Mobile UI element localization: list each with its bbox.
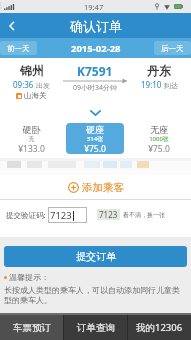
staticText: ¥75.0 [66, 143, 124, 154]
staticText: 我的12306 [136, 321, 183, 334]
staticText: 确认订单 [70, 18, 122, 34]
staticText: 无 [3, 135, 60, 143]
staticText: 长按成人类型的乘车人，可以自动添加同行儿童类型的乘车人。 [4, 285, 187, 306]
button[interactable]: 硬座 [66, 123, 124, 154]
button[interactable]: 看不清，换一张 [123, 211, 165, 219]
button[interactable]: 硬卧 [3, 123, 60, 154]
staticText: 硬座 [66, 124, 124, 135]
button[interactable]: 提交订单 [4, 246, 187, 267]
staticText: 提交订单 [76, 250, 116, 263]
staticText: 2015-02-28 [71, 42, 121, 55]
button[interactable]: 添加乘客 [0, 175, 191, 199]
button[interactable]: 无座 [130, 123, 188, 154]
staticText: 丹东 [147, 63, 171, 78]
staticText: 硬卧 [3, 124, 60, 135]
button[interactable]: 车票预订 [0, 315, 63, 340]
staticText: 09:36 [13, 79, 34, 90]
button[interactable]: Captcha image, tap to refresh [97, 209, 120, 220]
staticText: 1000张 [130, 135, 188, 143]
staticText: 后一天 [161, 44, 184, 53]
staticText: K7591 [77, 63, 113, 79]
staticText: 无座 [130, 124, 188, 135]
staticText: 出发 [36, 81, 50, 90]
staticText: 314张 [66, 135, 124, 143]
button[interactable]: 7123 [48, 207, 87, 223]
staticText: 7123 [50, 209, 72, 222]
staticText: ¥75.0 [130, 143, 188, 154]
staticText: 锦州 [20, 63, 44, 78]
staticText: 订单查询 [77, 322, 115, 334]
button[interactable]: 前一天 [0, 41, 37, 55]
staticText: 19:10 [141, 79, 162, 90]
staticText: 车票预订 [13, 322, 51, 334]
button[interactable]: 我的12306 [128, 315, 191, 340]
button[interactable]: Back [0, 14, 24, 38]
staticText: 7123 [99, 209, 118, 220]
staticText: 到达 [164, 81, 178, 90]
staticText: 添加乘客 [82, 181, 124, 194]
staticText: 19:47 [84, 2, 104, 12]
staticText: 09小时34分钟 [73, 83, 118, 93]
staticText: ¥133.0 [3, 143, 60, 154]
button[interactable]: 订单查询 [64, 315, 127, 340]
staticText: 温馨提示： [9, 272, 49, 282]
button[interactable]: 后一天 [154, 41, 191, 55]
staticText: 提交验证码: [6, 210, 46, 220]
staticText: 前一天 [7, 44, 30, 53]
staticText: 山海关 [24, 91, 47, 100]
